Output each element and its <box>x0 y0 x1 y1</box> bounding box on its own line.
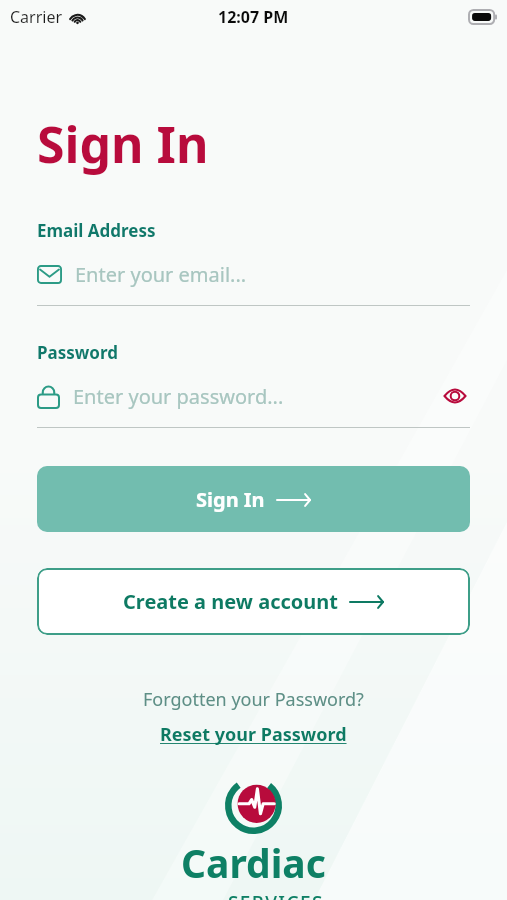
button[interactable]: Reset your Password <box>156 720 351 749</box>
staticText: Forgotten your Password? <box>143 687 364 712</box>
staticText: Enter your email... <box>75 261 247 288</box>
staticText: Enter your password... <box>73 383 284 410</box>
button[interactable]: Show password <box>440 381 470 411</box>
button[interactable]: Email <box>37 256 470 306</box>
staticText: Password <box>37 341 118 364</box>
staticText: 12:07 PM <box>218 6 289 28</box>
staticText: Carrier <box>10 6 63 28</box>
staticText: Sign In <box>37 110 209 178</box>
button[interactable]: Sign In <box>37 466 470 532</box>
staticText: SERVICES <box>228 890 324 900</box>
staticText: Email Address <box>37 219 156 242</box>
other: Password <box>37 384 60 409</box>
staticText: Reset your Password <box>160 722 347 747</box>
staticText: Sign In <box>196 486 265 513</box>
button[interactable]: Password <box>37 378 470 428</box>
staticText: Create a new account <box>123 588 338 615</box>
staticText: Cardiac <box>181 836 326 889</box>
button[interactable]: Forgotten your Password? <box>139 685 368 714</box>
button[interactable]: Create a new account <box>37 568 470 635</box>
other: Email <box>37 265 62 284</box>
